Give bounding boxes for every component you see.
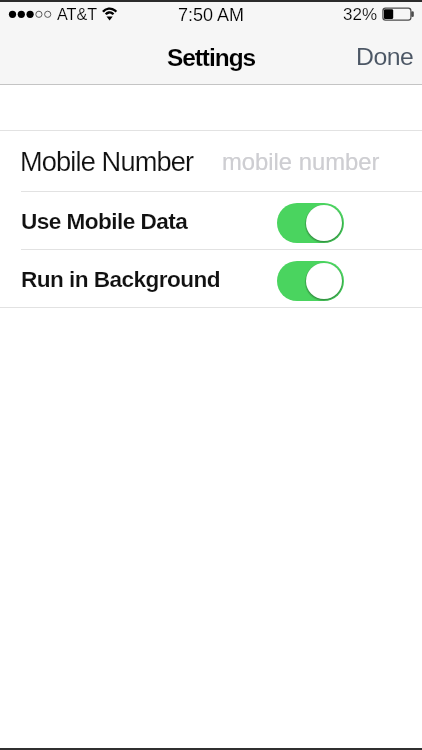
staticText: Use Mobile Data — [21, 209, 188, 234]
staticText: Run in Background — [21, 267, 221, 292]
button[interactable]: Done — [348, 33, 422, 81]
staticText: Settings — [0, 44, 422, 71]
button[interactable]: Mobile Number — [0, 131, 422, 191]
staticText: 32% — [343, 5, 378, 24]
staticText: Mobile Number — [20, 146, 194, 176]
staticText: Done — [356, 43, 414, 71]
button[interactable]: Run in Background — [0, 250, 422, 307]
staticText: 7:50 AM — [0, 5, 422, 25]
staticText: AT&T — [57, 5, 98, 23]
button[interactable]: Use Mobile Data — [0, 192, 422, 249]
button[interactable]: Use Mobile Data switch, on — [277, 203, 344, 243]
staticText: mobile number — [222, 148, 380, 175]
button[interactable]: Run in Background switch, on — [277, 261, 344, 301]
